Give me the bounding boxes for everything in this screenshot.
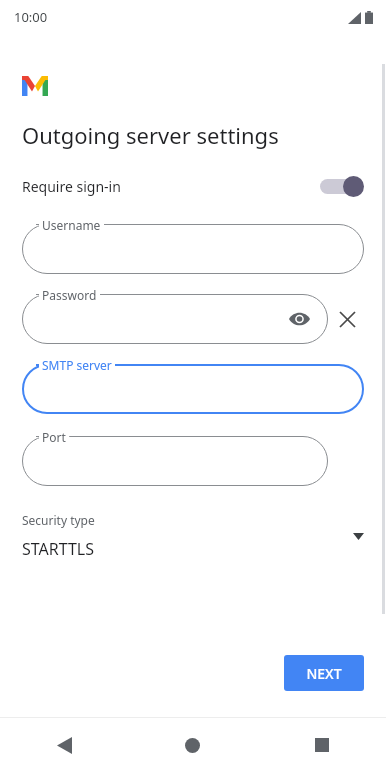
button[interactable]: Clear password: [330, 302, 364, 336]
staticText: Password: [42, 287, 97, 303]
button[interactable]: Port: [22, 436, 328, 486]
staticText: Username: [42, 217, 101, 233]
button[interactable]: Back: [0, 718, 128, 772]
staticText: Security type: [22, 512, 95, 528]
staticText: NEXT: [306, 664, 342, 683]
staticText: STARTTLS: [22, 538, 95, 560]
button[interactable]: Security type: [22, 512, 364, 560]
button[interactable]: Show password: [284, 304, 314, 334]
staticText: 10:00: [14, 8, 48, 26]
staticText: Outgoing server settings: [22, 120, 279, 150]
staticText: Port: [42, 429, 66, 445]
button[interactable]: Require sign-in: [22, 168, 364, 204]
button[interactable]: Username: [22, 224, 364, 274]
button[interactable]: Password: [22, 294, 328, 344]
staticText: Require sign-in: [22, 177, 121, 196]
button[interactable]: Home: [128, 718, 257, 772]
button[interactable]: SMTP server: [22, 364, 364, 414]
button[interactable]: Recents: [257, 718, 386, 772]
button[interactable]: Require sign-in toggle: [312, 169, 364, 203]
button[interactable]: NEXT: [284, 655, 364, 691]
staticText: SMTP server: [42, 357, 112, 373]
